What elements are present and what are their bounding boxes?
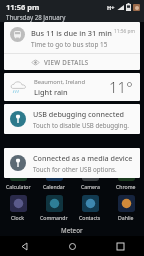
staticText: Beaumont, Ireland: [34, 78, 85, 86]
button[interactable]: Back: [0, 236, 48, 256]
staticText: Camera: [81, 183, 100, 190]
staticText: 11:56 pm: [114, 28, 135, 35]
button[interactable]: Camera: [72, 164, 108, 190]
button[interactable]: Commandr: [36, 195, 72, 221]
staticText: Light rain: [34, 87, 68, 97]
staticText: Thursday 28 January: [6, 13, 66, 21]
button[interactable]: Chrome: [108, 164, 144, 190]
button[interactable]: Calendar: [36, 164, 72, 190]
button[interactable]: Beaumont, Ireland: [4, 73, 140, 101]
staticText: Clock: [11, 214, 25, 221]
staticText: Calendar: [43, 183, 65, 190]
staticText: Dahlie: [118, 214, 134, 221]
staticText: 11:56 pm: [6, 2, 40, 12]
staticText: VIEW DETAILS: [44, 58, 89, 66]
staticText: Touch to disable USB debugging.: [33, 121, 129, 129]
button[interactable]: Calculator: [0, 164, 36, 190]
staticText: H+: [107, 4, 115, 11]
staticText: Connected as a media device: [33, 153, 133, 163]
staticText: Time to go to bus stop 15: [31, 40, 108, 49]
staticText: Commandr: [40, 214, 68, 221]
button[interactable]: Recent apps: [96, 236, 144, 256]
button[interactable]: Home: [48, 236, 96, 256]
staticText: Chrome: [116, 183, 136, 190]
staticText: Bus 11 is due in 31 min: [31, 28, 112, 38]
button[interactable]: Bus 11 is due in 31 min: [4, 22, 140, 53]
button[interactable]: VIEW DETAILS: [4, 54, 140, 70]
staticText: Meteor: [61, 226, 83, 234]
button[interactable]: Connected as a media device: [4, 148, 140, 178]
button[interactable]: Contacts: [72, 195, 108, 221]
staticText: Touch for other USB options.: [33, 165, 117, 173]
staticText: 11°: [109, 77, 133, 97]
button[interactable]: Clock: [0, 195, 36, 221]
button[interactable]: USB debugging connected: [4, 104, 140, 134]
staticText: USB debugging connected: [33, 109, 124, 119]
staticText: Contacts: [79, 214, 101, 221]
staticText: Calculator: [6, 183, 31, 190]
button[interactable]: Dahlie: [108, 195, 144, 221]
